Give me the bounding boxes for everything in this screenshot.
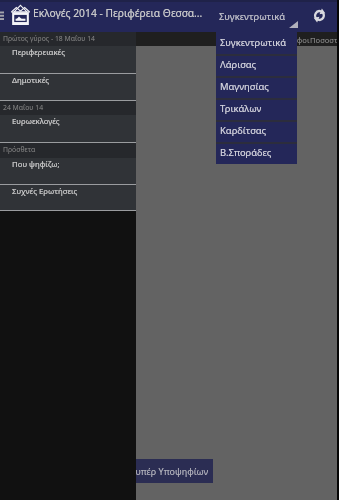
button[interactable]: Δημοτικές <box>0 74 136 101</box>
staticText: Εκλογές 2014 - Περιφέρεια Θεσσα... <box>33 6 203 20</box>
staticText: Β.Σποράδες <box>220 146 272 159</box>
button[interactable]: Refresh <box>312 8 327 23</box>
button[interactable]: Συχνές Ερωτήσεις <box>0 185 136 211</box>
button[interactable]: Που ψηφίζω; <box>0 158 136 185</box>
staticText: Μαγνησίας <box>220 80 269 93</box>
staticText: Συγκεντρωτικά <box>219 10 286 23</box>
staticText: Δημοτικές <box>12 75 50 86</box>
button[interactable]: Καρδίτσας <box>216 120 297 142</box>
staticText: Λάρισας <box>220 58 257 71</box>
staticText: Ψήφοι <box>286 35 310 45</box>
staticText: Ευρωεκλογές <box>12 116 60 127</box>
button[interactable]: Περιφερειακές <box>0 46 136 74</box>
button[interactable]: Open navigation drawer <box>0 11 4 21</box>
button[interactable]: Λάρισας <box>216 54 297 76</box>
staticText: Πρώτος γύρος - 18 Μαΐου 14 <box>3 34 96 43</box>
staticText: Πρόσθετα <box>3 145 36 154</box>
staticText: Σταυροί υπέρ Υποψηφίων <box>99 465 209 477</box>
staticText: Συχνές Ερωτήσεις <box>12 186 78 197</box>
staticText: Που ψηφίζω; <box>12 159 60 170</box>
button[interactable]: Τρικάλων <box>216 98 297 120</box>
staticText: Περιφερειακές <box>12 47 65 58</box>
button[interactable]: Συγκεντρωτικά <box>216 32 297 54</box>
button[interactable]: Ευρωεκλογές <box>0 115 136 143</box>
staticText: Καρδίτσας <box>220 124 267 137</box>
staticText: 24 Μαΐου 14 <box>3 103 44 112</box>
button[interactable]: Μαγνησίας <box>216 76 297 98</box>
staticText: Συγκεντρωτικά <box>220 36 287 49</box>
button[interactable]: Β.Σποράδες <box>216 142 297 164</box>
staticText: Τρικάλων <box>220 102 262 115</box>
staticText: Ποσοστό <box>310 35 339 45</box>
button[interactable]: Select region <box>213 0 299 32</box>
